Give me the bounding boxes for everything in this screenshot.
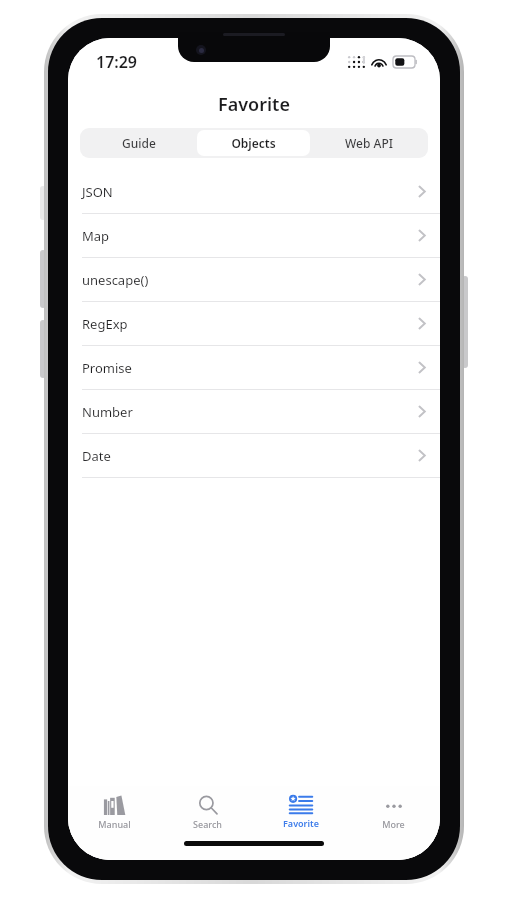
staticText: More: [382, 818, 405, 830]
button[interactable]: Objects: [197, 130, 310, 156]
button[interactable]: Map: [68, 214, 440, 257]
staticText: unescape(): [82, 271, 418, 289]
staticText: Search: [193, 818, 222, 830]
button[interactable]: More: [347, 786, 440, 838]
staticText: Date: [82, 447, 418, 465]
staticText: 17:29: [96, 51, 138, 73]
staticText: Manual: [98, 818, 131, 830]
button[interactable]: Favorite: [254, 786, 347, 838]
staticText: Promise: [82, 359, 418, 377]
staticText: Map: [82, 227, 418, 245]
staticText: Objects: [231, 135, 276, 151]
button[interactable]: Search: [161, 786, 254, 838]
staticText: Guide: [122, 135, 156, 151]
button[interactable]: Promise: [68, 346, 440, 389]
staticText: Favorite: [218, 92, 290, 117]
button[interactable]: Manual: [68, 786, 161, 838]
button[interactable]: Web API: [312, 130, 425, 156]
button[interactable]: Guide: [83, 130, 195, 156]
staticText: JSON: [82, 183, 418, 201]
staticText: RegExp: [82, 315, 418, 333]
button[interactable]: Date: [68, 434, 440, 477]
staticText: Number: [82, 403, 418, 421]
button[interactable]: JSON: [68, 170, 440, 213]
staticText: Favorite: [283, 817, 319, 829]
staticText: Web API: [345, 135, 393, 151]
button[interactable]: unescape(): [68, 258, 440, 301]
button[interactable]: RegExp: [68, 302, 440, 345]
button[interactable]: Number: [68, 390, 440, 433]
